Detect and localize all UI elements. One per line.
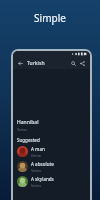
button[interactable]: A skylands (13, 174, 90, 189)
staticText: Series (31, 183, 41, 188)
staticText: Series (31, 168, 41, 173)
button[interactable]: Back (16, 59, 25, 68)
button[interactable]: A absolute (13, 159, 90, 174)
button[interactable]: A man (13, 144, 90, 159)
button[interactable]: Search (69, 59, 78, 68)
staticText: Series (17, 127, 27, 132)
staticText: Turkish (27, 60, 69, 67)
staticText: Suggested (17, 137, 40, 143)
button[interactable]: Share (78, 59, 87, 68)
staticText: Simple (0, 11, 100, 25)
staticText: A absolute (31, 161, 54, 167)
staticText: Hannibal (17, 119, 39, 126)
staticText: A man (31, 146, 45, 152)
staticText: Genre (31, 153, 42, 158)
staticText: A skylands (31, 176, 54, 182)
